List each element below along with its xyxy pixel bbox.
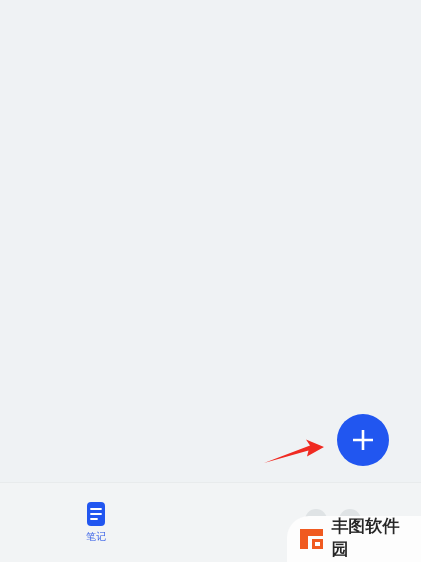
- staticText: 丰图软件园: [331, 516, 415, 560]
- staticText: 笔记: [86, 530, 106, 543]
- button[interactable]: New note: [337, 414, 389, 466]
- button[interactable]: 笔记: [66, 502, 126, 543]
